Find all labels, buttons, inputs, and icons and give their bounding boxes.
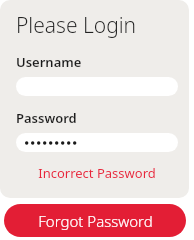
staticText: Incorrect Password xyxy=(38,164,156,182)
button[interactable] xyxy=(16,133,178,152)
staticText: Forgot Password xyxy=(38,211,153,231)
button[interactable] xyxy=(16,77,178,96)
staticText: Username xyxy=(16,53,82,71)
staticText: Password xyxy=(16,109,77,127)
button[interactable]: Forgot Password xyxy=(4,204,186,237)
staticText: Please Login xyxy=(16,11,137,40)
